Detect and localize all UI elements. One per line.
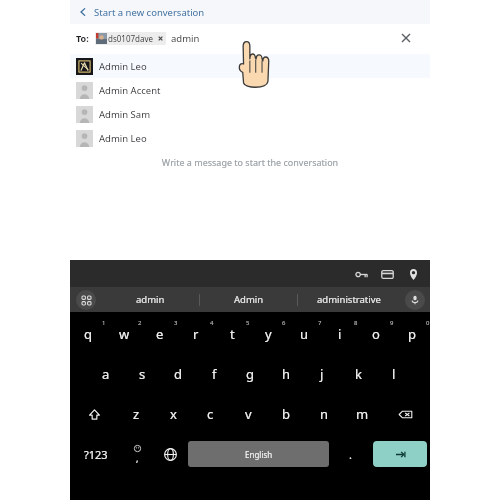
button[interactable]: Admin Leo xyxy=(70,126,430,150)
staticText: s xyxy=(139,365,146,383)
button[interactable]: l xyxy=(376,354,412,394)
staticText: Admin Leo xyxy=(99,60,147,73)
button[interactable]: Admin Accent xyxy=(70,78,430,102)
staticText: Write a message to start the conversatio… xyxy=(70,156,430,168)
button[interactable]: w xyxy=(106,314,142,354)
button[interactable]: r xyxy=(178,314,214,354)
staticText: 0 xyxy=(426,319,430,327)
staticText: Admin Leo xyxy=(99,132,147,145)
button[interactable]: Admin xyxy=(200,287,297,312)
other: Remove ds0107dave xyxy=(157,35,164,42)
staticText: n xyxy=(320,405,329,423)
button[interactable]: Backspace xyxy=(381,394,430,434)
button[interactable]: q xyxy=(70,314,106,354)
staticText: 1 xyxy=(102,319,106,327)
button[interactable]: g xyxy=(232,354,268,394)
button[interactable]: d xyxy=(160,354,196,394)
button[interactable]: administrative xyxy=(298,287,400,312)
button[interactable]: y xyxy=(250,314,286,354)
button[interactable]: x xyxy=(155,394,192,434)
staticText: d xyxy=(174,365,182,383)
button[interactable]: p xyxy=(394,314,430,354)
staticText: x xyxy=(170,405,177,423)
staticText: English xyxy=(245,449,273,460)
button[interactable]: c xyxy=(192,394,229,434)
button[interactable]: Toolbar xyxy=(70,287,102,312)
staticText: 2 xyxy=(138,319,142,327)
button[interactable]: k xyxy=(340,354,376,394)
staticText: 7 xyxy=(318,319,322,327)
staticText: a xyxy=(102,365,110,383)
button[interactable]: Enter xyxy=(373,441,427,467)
staticText: admin xyxy=(171,32,200,45)
button[interactable]: Clear xyxy=(398,30,414,46)
button[interactable]: a xyxy=(88,354,124,394)
button[interactable]: n xyxy=(305,394,343,434)
button[interactable]: o xyxy=(358,314,394,354)
button[interactable]: h xyxy=(268,354,304,394)
button[interactable]: s xyxy=(124,354,160,394)
staticText: administrative xyxy=(317,293,381,306)
button[interactable]: j xyxy=(304,354,340,394)
button[interactable]: ?123 xyxy=(70,434,121,474)
staticText: c xyxy=(207,405,214,423)
button[interactable]: Shift xyxy=(70,394,118,434)
staticText: y xyxy=(265,325,272,343)
button[interactable]: t xyxy=(214,314,250,354)
staticText: To: xyxy=(76,32,89,44)
button[interactable]: Emoji and comma xyxy=(121,434,154,474)
button[interactable]: m xyxy=(343,394,381,434)
staticText: l xyxy=(392,365,396,383)
staticText: 9 xyxy=(390,319,394,327)
staticText: w xyxy=(119,325,130,343)
staticText: k xyxy=(355,365,362,383)
button[interactable]: . xyxy=(330,434,370,474)
staticText: e xyxy=(156,325,164,343)
staticText: t xyxy=(230,325,235,343)
staticText: 6 xyxy=(282,319,286,327)
button[interactable]: Admin Leo xyxy=(70,54,430,78)
staticText: h xyxy=(282,365,291,383)
staticText: g xyxy=(246,365,254,383)
staticText: , xyxy=(136,452,139,464)
button[interactable]: Voice input xyxy=(400,287,430,312)
button[interactable]: i xyxy=(322,314,358,354)
button[interactable]: Payment methods xyxy=(376,263,398,285)
button[interactable]: u xyxy=(286,314,322,354)
staticText: 8 xyxy=(354,319,358,327)
staticText: u xyxy=(300,325,309,343)
staticText: Admin xyxy=(234,293,264,306)
button[interactable]: f xyxy=(196,354,232,394)
button[interactable]: ds0107dave xyxy=(95,32,166,45)
staticText: f xyxy=(212,365,217,383)
staticText: i xyxy=(338,325,342,343)
button[interactable]: admin xyxy=(102,287,199,312)
button[interactable]: Admin Sam xyxy=(70,102,430,126)
staticText: b xyxy=(282,405,290,423)
button[interactable]: b xyxy=(267,394,305,434)
staticText: Admin Sam xyxy=(99,108,151,121)
staticText: . xyxy=(349,447,352,462)
button[interactable]: e xyxy=(142,314,178,354)
staticText: o xyxy=(372,325,380,343)
button[interactable]: z xyxy=(118,394,155,434)
button[interactable]: Passwords xyxy=(350,263,372,285)
staticText: Admin Accent xyxy=(99,84,161,97)
button[interactable]: Change language xyxy=(154,434,187,474)
staticText: q xyxy=(84,325,92,343)
staticText: admin xyxy=(136,293,165,306)
staticText: 3 xyxy=(174,319,178,327)
button[interactable]: v xyxy=(229,394,267,434)
staticText: z xyxy=(133,405,140,423)
button[interactable]: Addresses xyxy=(402,263,424,285)
staticText: m xyxy=(356,405,369,423)
staticText: ds0107dave xyxy=(108,33,154,44)
other: Back xyxy=(76,5,90,19)
staticText: p xyxy=(408,325,416,343)
staticText: 4 xyxy=(210,319,214,327)
staticText: r xyxy=(193,325,199,343)
staticText: j xyxy=(320,365,324,383)
staticText: v xyxy=(245,405,252,423)
button[interactable]: English xyxy=(188,441,329,467)
button[interactable]: Back xyxy=(70,0,430,24)
